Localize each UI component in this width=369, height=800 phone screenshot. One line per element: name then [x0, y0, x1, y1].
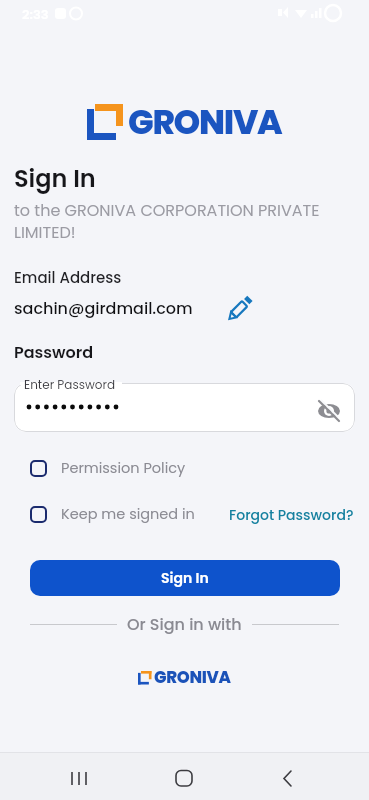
staticText: sachin@girdmail.com: [14, 297, 193, 319]
staticText: Sign In: [161, 568, 209, 588]
staticText: Sign In: [14, 162, 96, 196]
button[interactable]: [271, 760, 303, 792]
button[interactable]: Sign In: [30, 560, 340, 596]
staticText: GRONIVA: [128, 98, 282, 146]
staticText: Keep me signed in: [61, 504, 195, 524]
button[interactable]: Permission Policy: [30, 458, 186, 478]
staticText: Or Sign in with: [127, 613, 242, 635]
staticText: Email Address: [14, 267, 122, 288]
staticText: Permission Policy: [61, 458, 186, 478]
staticText: 2:33: [22, 5, 49, 23]
staticText: to the GRONIVA CORPORATION PRIVATE LIMIT…: [14, 199, 320, 244]
staticText: Password: [14, 341, 94, 363]
staticText: Enter Password: [24, 376, 116, 393]
button[interactable]: Keep me signed in: [30, 504, 195, 524]
button[interactable]: [63, 760, 95, 792]
button[interactable]: [220, 294, 254, 328]
button[interactable]: Forgot Password?: [229, 505, 354, 525]
button[interactable]: [314, 395, 344, 425]
button[interactable]: GRONIVA: [138, 666, 231, 689]
button[interactable]: [168, 760, 200, 792]
staticText: GRONIVA: [154, 666, 231, 689]
